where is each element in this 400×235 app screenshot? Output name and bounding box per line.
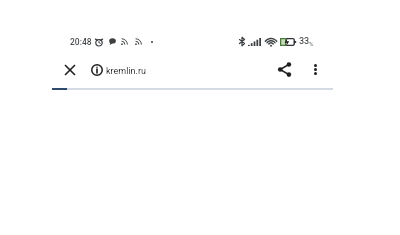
button[interactable]: Site information <box>85 58 108 81</box>
staticText: kremlin.ru <box>106 66 146 77</box>
staticText: 33 <box>299 36 310 47</box>
button[interactable]: Close <box>57 57 82 82</box>
button[interactable]: More options <box>303 57 327 81</box>
staticText: 20:48 <box>70 37 92 47</box>
button[interactable]: Share <box>272 57 297 82</box>
button[interactable]: kremlin.ru <box>106 60 146 83</box>
staticText: % <box>309 40 314 47</box>
